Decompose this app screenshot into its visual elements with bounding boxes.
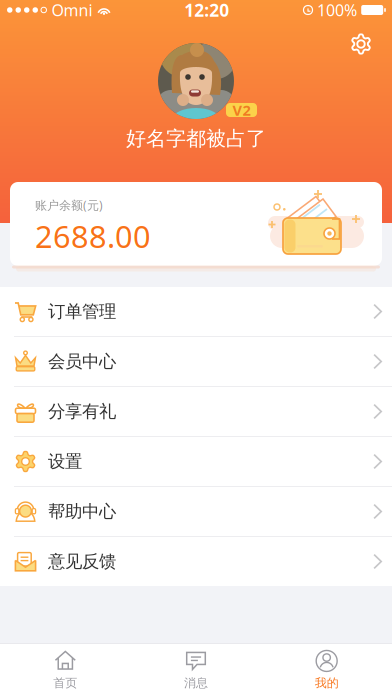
button[interactable]: Settings [344,27,378,61]
staticText: 意见反馈 [48,551,116,572]
staticText: 好名字都被占了 [126,126,266,151]
staticText: 100% [317,0,357,21]
button[interactable]: 分享有礼 [0,387,392,436]
button[interactable]: 帮助中心 [0,487,392,536]
button[interactable]: 我的 [261,644,392,696]
staticText: 分享有礼 [48,401,116,422]
button[interactable]: 会员中心 [0,337,392,386]
staticText: V2 [232,100,250,120]
button[interactable]: 设置 [0,437,392,486]
button[interactable]: 消息 [131,644,261,696]
staticText: 会员中心 [48,351,116,372]
button[interactable]: 意见反馈 [0,537,392,586]
staticText: 2688.00 [35,215,151,257]
staticText: 首页 [53,675,77,690]
button[interactable]: 订单管理 [0,287,392,336]
staticText: 12:20 [184,0,229,22]
staticText: 我的 [315,675,339,690]
staticText: Omni [51,0,92,21]
staticText: 账户余额(元) [35,197,103,213]
staticText: 设置 [48,451,82,472]
staticText: 消息 [184,675,208,690]
staticText: 帮助中心 [48,501,116,522]
button[interactable]: 首页 [0,644,131,696]
staticText: 订单管理 [48,301,116,322]
